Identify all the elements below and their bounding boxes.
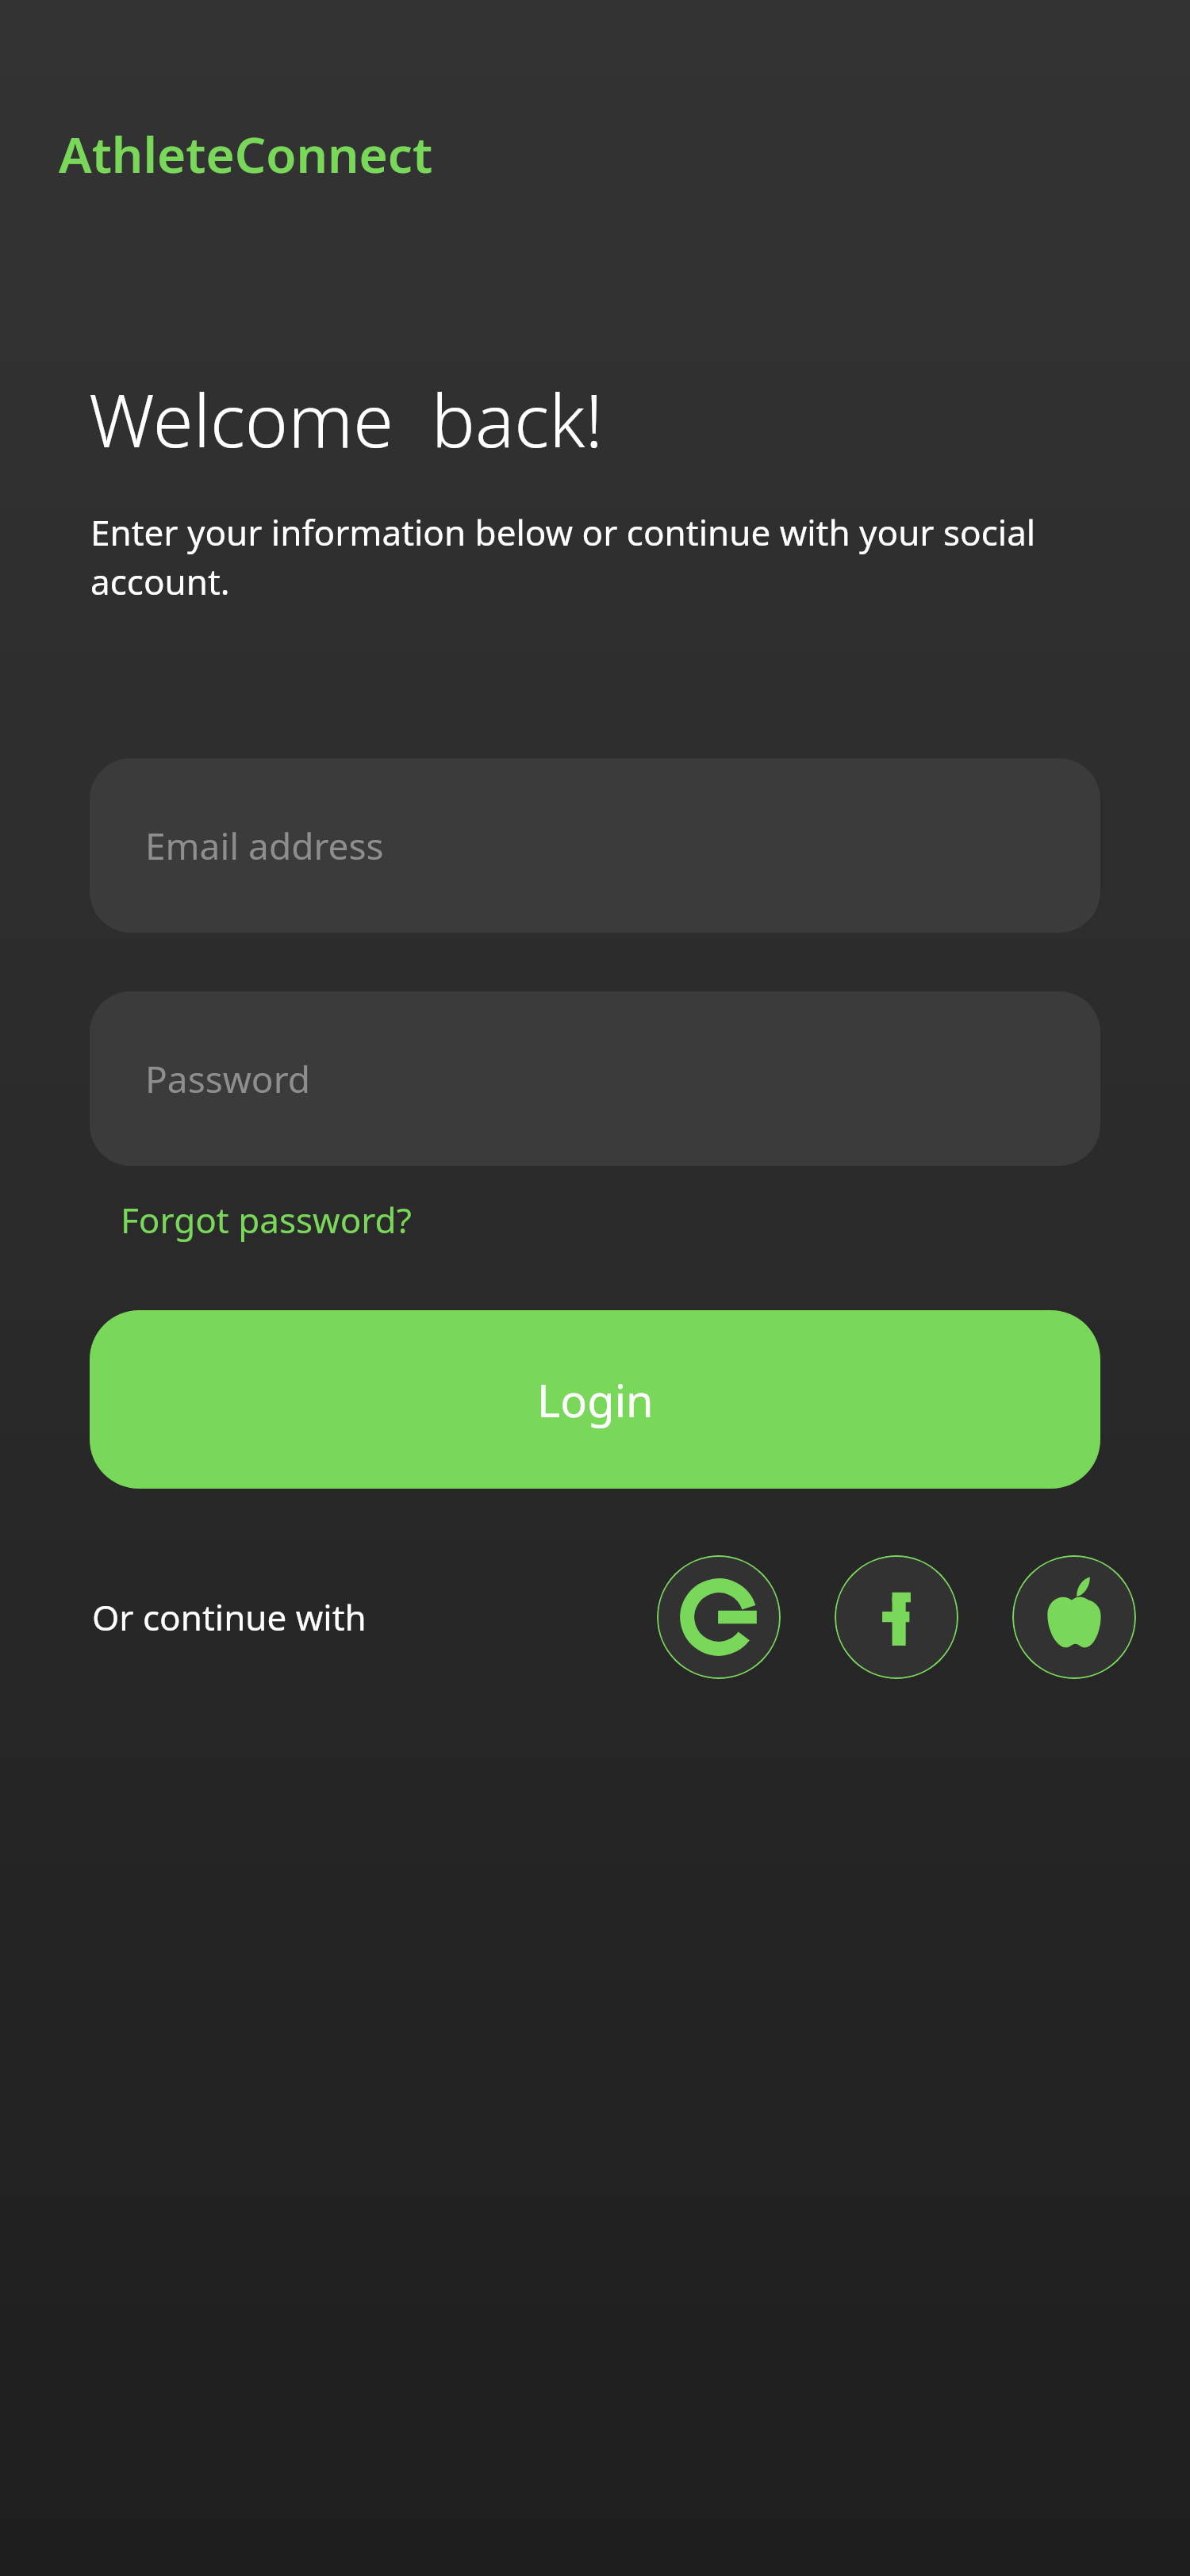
staticText: Welcome back! bbox=[89, 370, 604, 469]
button[interactable]: Password bbox=[90, 991, 1100, 1166]
button[interactable]: Sign in with Google bbox=[657, 1555, 781, 1679]
button[interactable]: Login bbox=[90, 1310, 1100, 1489]
button[interactable]: AthleteConnect bbox=[59, 121, 433, 187]
button[interactable]: Email address bbox=[90, 758, 1100, 933]
staticText: Login bbox=[537, 1370, 654, 1430]
staticText: Forgot password? bbox=[121, 1196, 412, 1244]
button[interactable]: Forgot password? bbox=[121, 1190, 412, 1250]
staticText: Or continue with bbox=[92, 1593, 367, 1641]
button[interactable]: Sign in with Facebook bbox=[835, 1555, 958, 1679]
button[interactable]: Sign in with Apple bbox=[1012, 1555, 1136, 1679]
staticText: Password bbox=[145, 1054, 311, 1104]
staticText: Enter your information below or continue… bbox=[90, 508, 1119, 605]
staticText: Email address bbox=[145, 821, 384, 871]
